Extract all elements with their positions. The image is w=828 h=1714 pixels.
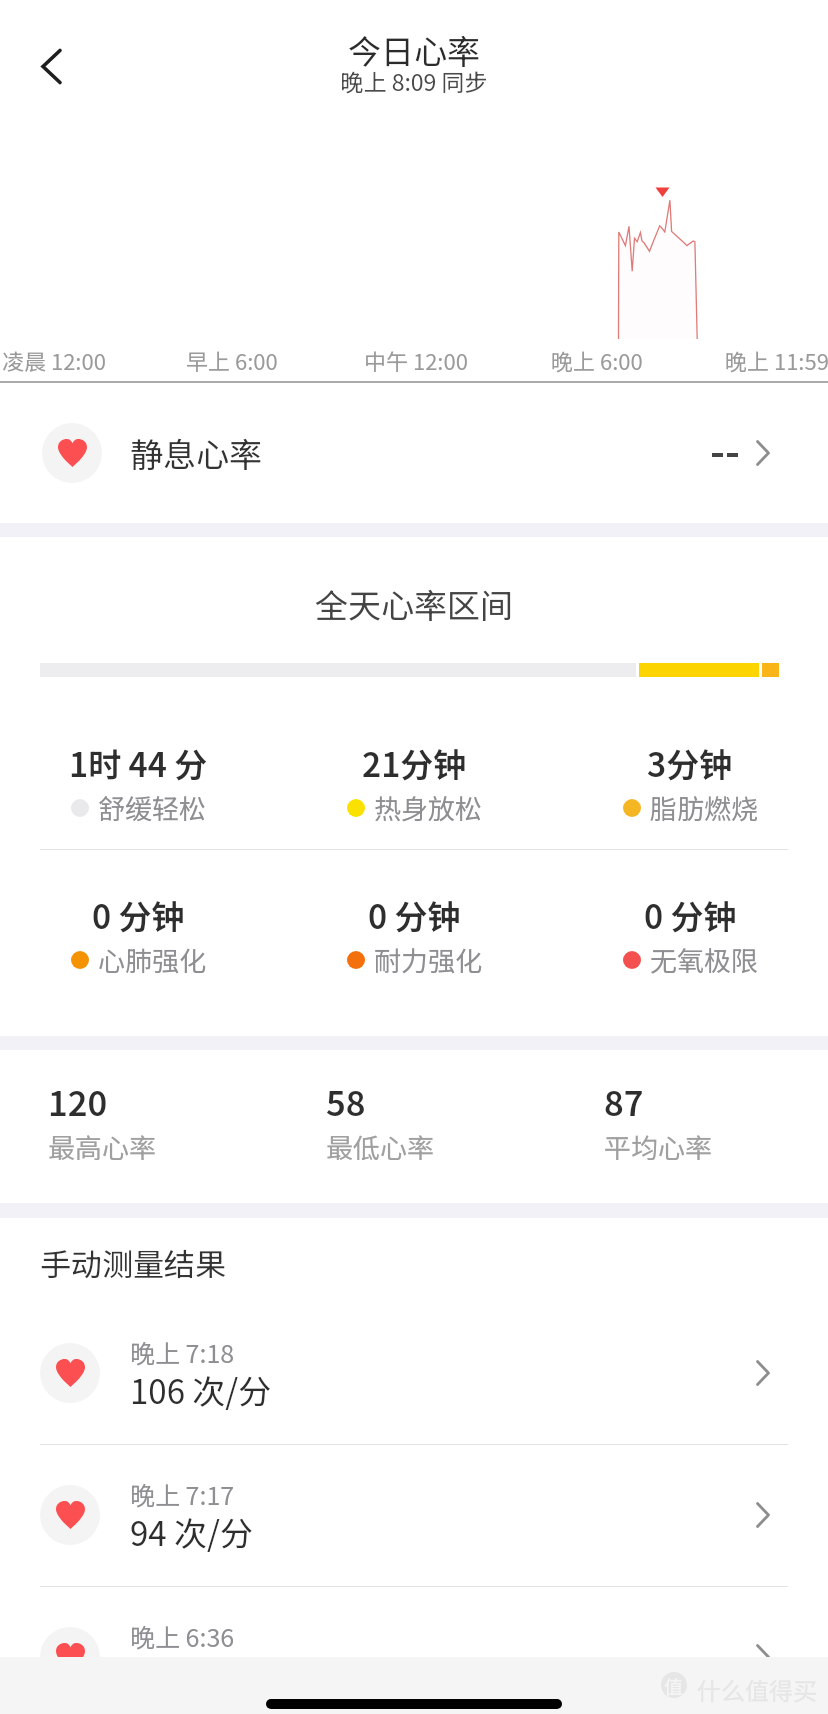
staticText: 凌晨 12:00	[2, 344, 106, 376]
staticText: 热身放松	[374, 788, 482, 827]
staticText: 88 次/分	[130, 1650, 253, 1698]
staticText: 全天心率区间	[0, 580, 828, 628]
button[interactable]: 静息心率	[0, 383, 828, 523]
staticText: 21分钟	[362, 739, 467, 787]
staticText: 120	[48, 1077, 108, 1126]
staticText: 舒缓轻松	[98, 788, 206, 827]
staticText: 106 次/分	[130, 1366, 272, 1414]
staticText: 0 分钟	[92, 891, 185, 939]
staticText: 中午 12:00	[364, 344, 468, 376]
staticText: 最高心率	[48, 1127, 156, 1166]
staticText: 早上 6:00	[186, 344, 278, 376]
staticText: 晚上 7:17	[130, 1476, 235, 1512]
staticText: 晚上 7:18	[130, 1334, 235, 1370]
staticText: 无氧极限	[650, 940, 758, 979]
staticText: 晚上 11:59	[725, 344, 828, 376]
staticText: 58	[326, 1077, 366, 1126]
staticText: 最低心率	[326, 1127, 434, 1166]
button[interactable]: 晚上 7:18	[0, 1302, 828, 1444]
staticText: 晚上 6:36	[130, 1618, 235, 1654]
staticText: 耐力强化	[374, 940, 482, 979]
button[interactable]: Back	[26, 40, 82, 96]
staticText: 静息心率	[130, 429, 262, 477]
staticText: 心肺强化	[98, 940, 206, 979]
staticText: 3分钟	[647, 739, 733, 787]
staticText: 今日心率	[0, 26, 828, 74]
staticText: 0 分钟	[644, 891, 737, 939]
staticText: 87	[604, 1077, 644, 1126]
staticText: 晚上 8:09 同步	[0, 64, 828, 97]
button[interactable]: 晚上 6:36	[0, 1586, 828, 1714]
button[interactable]: 晚上 7:17	[0, 1444, 828, 1586]
staticText: 平均心率	[604, 1127, 712, 1166]
staticText: 1时 44 分	[69, 739, 208, 787]
staticText: 手动测量结果	[40, 1240, 226, 1285]
staticText: 0 分钟	[368, 891, 461, 939]
staticText: 晚上 6:00	[551, 344, 643, 376]
staticText: 脂肪燃烧	[650, 788, 758, 827]
staticText: 什么值得买	[697, 1672, 817, 1707]
staticText: 值	[664, 1672, 684, 1698]
staticText: 94 次/分	[130, 1508, 253, 1556]
